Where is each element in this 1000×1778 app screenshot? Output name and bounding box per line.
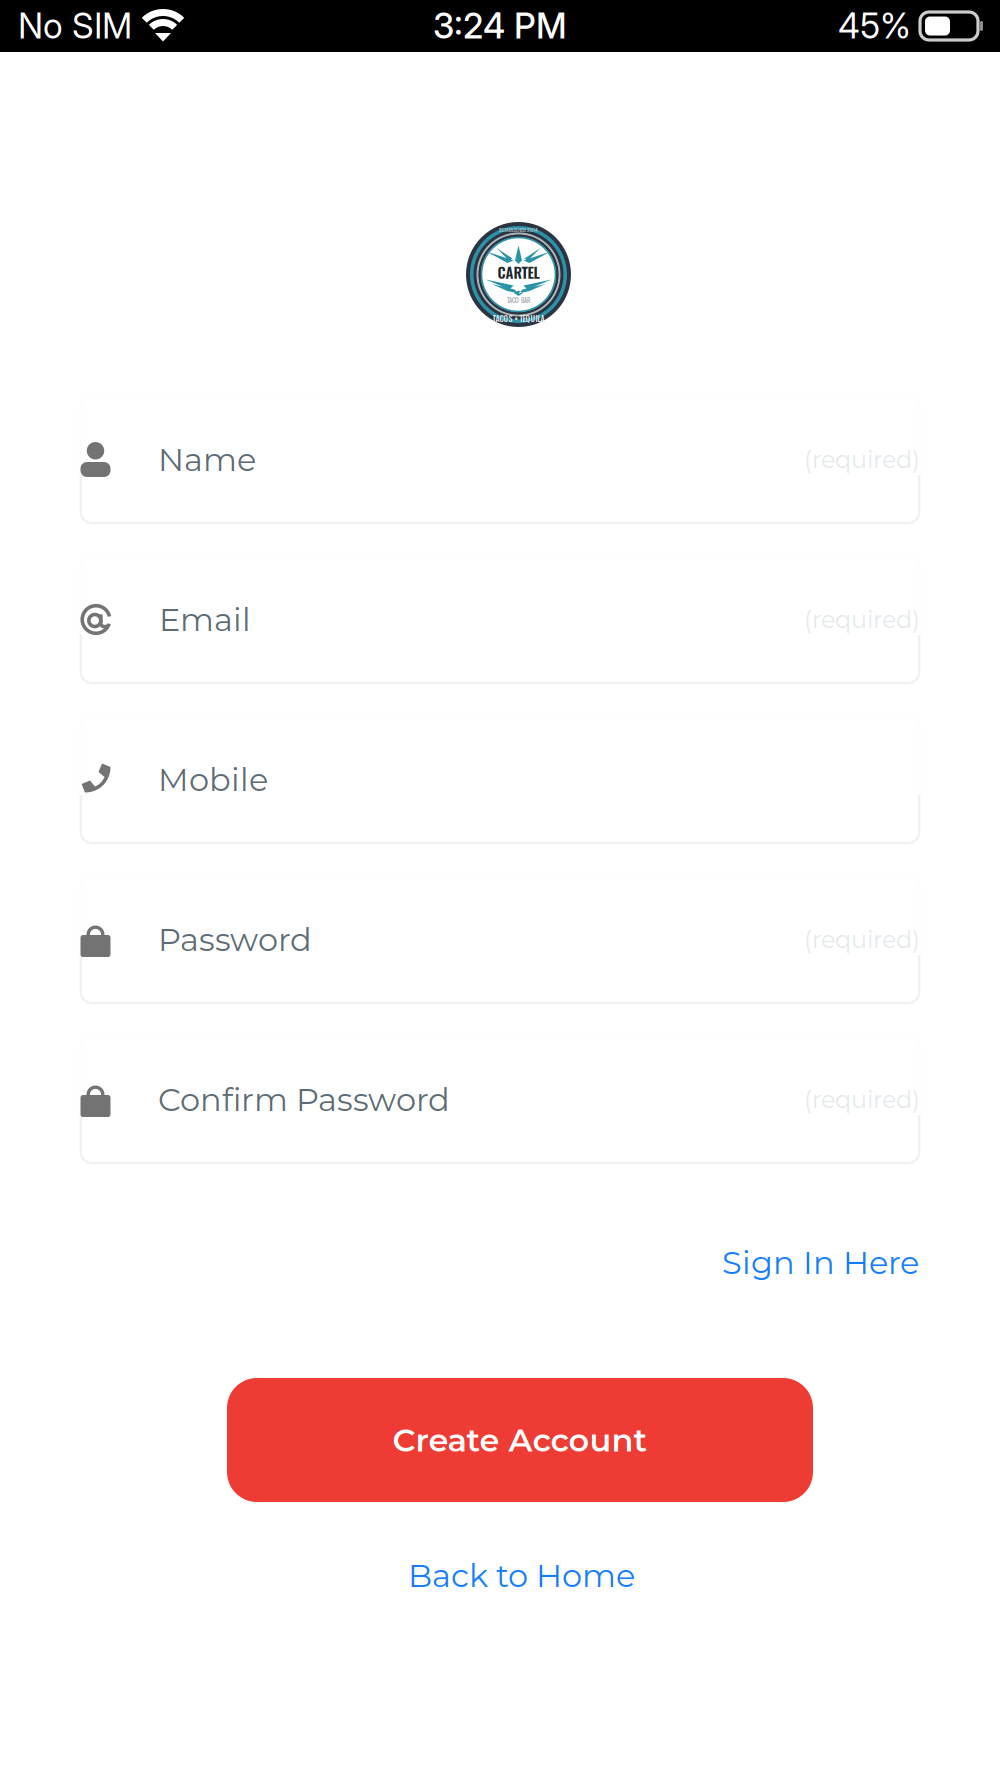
staticText: Back to Home [408,1556,635,1595]
staticText: Name [158,440,256,479]
staticText: ESTABLISHED 2014 [499,225,538,233]
button[interactable]: Mobile [80,715,920,844]
button[interactable]: Sign In Here [722,1243,919,1282]
staticText: Confirm Password [158,1080,450,1119]
staticText: Create Account [392,1420,647,1459]
staticText: (required) [804,925,920,954]
staticText: TACOS • TEQUILA [492,313,544,324]
staticText: Sign In Here [722,1243,919,1282]
staticText: Password [158,920,312,959]
staticText: Email [159,600,251,639]
staticText: CARTEL [497,261,539,283]
staticText: TACO BAR [507,295,530,305]
staticText: (required) [804,445,920,474]
button[interactable]: Back to Home [408,1556,635,1595]
button[interactable]: Password [80,875,920,1004]
staticText: 3:24 PM [433,5,567,47]
staticText: Mobile [158,760,268,799]
button[interactable]: Create Account [227,1378,813,1502]
button[interactable]: Email [80,555,920,684]
staticText: (required) [804,1085,920,1114]
staticText: (required) [804,605,920,634]
button[interactable]: Confirm Password [80,1035,920,1164]
staticText: No SIM [18,5,132,47]
staticText: 45% [838,5,911,47]
button[interactable]: Name [80,395,920,524]
